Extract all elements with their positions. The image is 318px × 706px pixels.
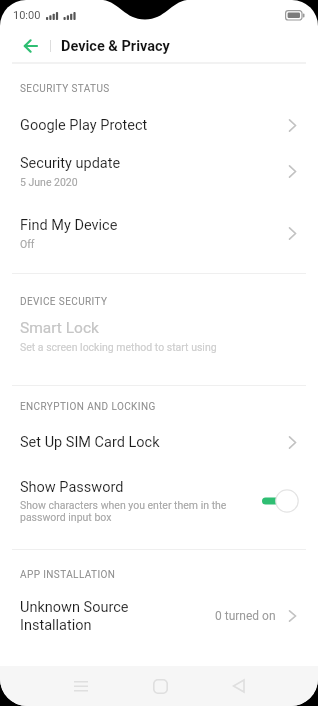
staticText: SECURITY STATUS <box>20 83 110 95</box>
staticText: Device & Privacy <box>61 38 170 55</box>
staticText: Show characters when you enter them in t… <box>20 499 227 511</box>
staticText: Set Up SIM Card Lock <box>20 434 160 451</box>
button[interactable]: Unknown Source <box>0 590 318 642</box>
staticText: Set a screen locking method to start usi… <box>20 341 217 353</box>
button[interactable]: Google Play Protect <box>0 105 318 145</box>
staticText: password input box <box>20 511 112 523</box>
staticText: Show Password <box>20 479 124 496</box>
staticText: Installation <box>20 617 92 634</box>
button[interactable]: Set Up SIM Card Lock <box>0 422 318 462</box>
button[interactable]: Security update <box>0 146 318 196</box>
staticText: Security update <box>20 155 121 172</box>
button[interactable]: Find My Device <box>0 208 318 258</box>
staticText: DEVICE SECURITY <box>20 296 108 308</box>
staticText: 5 June 2020 <box>20 176 78 188</box>
button[interactable] <box>61 668 101 704</box>
staticText: 10:00 <box>13 9 41 22</box>
staticText: Smart Lock <box>20 319 99 337</box>
button[interactable] <box>218 668 258 704</box>
staticText: Find My Device <box>20 217 118 234</box>
button[interactable] <box>140 668 180 704</box>
staticText: 0 turned on <box>215 609 276 623</box>
staticText: Unknown Source <box>20 599 129 616</box>
staticText: APP INSTALLATION <box>20 569 116 581</box>
staticText: Off <box>20 238 35 250</box>
button[interactable]: Show Password <box>0 469 318 532</box>
button[interactable]: Smart Lock <box>0 311 318 361</box>
staticText: ENCRYPTION AND LOCKING <box>20 401 156 413</box>
staticText: Google Play Protect <box>20 117 148 134</box>
button[interactable] <box>16 32 44 60</box>
